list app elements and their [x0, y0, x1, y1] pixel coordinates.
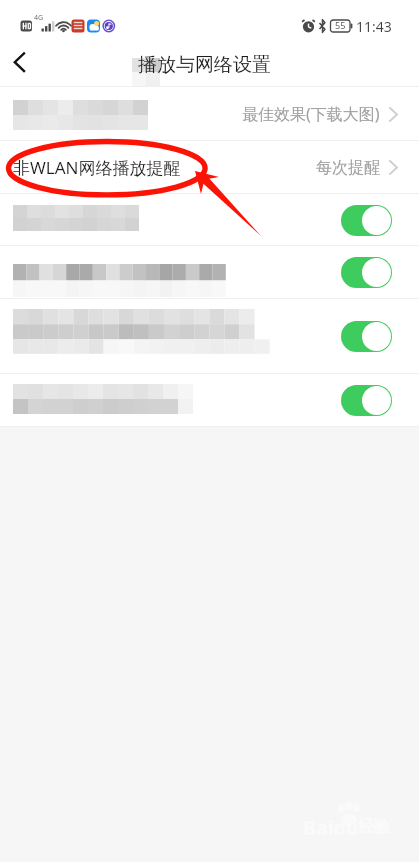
button[interactable]: 最佳效果(下载大图) — [0, 87, 419, 141]
button[interactable]: Back — [0, 43, 44, 87]
button[interactable]: Toggle — [341, 257, 392, 288]
staticText: 非WLAN网络播放提醒 — [13, 156, 181, 179]
staticText: 4G — [34, 13, 44, 23]
button[interactable]: 非WLAN网络播放提醒 — [0, 141, 419, 194]
button[interactable]: Toggle — [0, 374, 419, 427]
staticText: 最佳效果(下载大图) — [242, 103, 380, 125]
button[interactable]: Toggle — [341, 321, 392, 352]
button[interactable]: Toggle — [0, 194, 419, 246]
staticText: 55 — [335, 19, 346, 31]
staticText: 播放与网络设置 — [138, 53, 271, 77]
button[interactable]: Toggle — [341, 205, 392, 236]
staticText: 11:43 — [356, 17, 392, 36]
button[interactable]: Toggle — [341, 385, 392, 416]
button[interactable]: Toggle — [0, 299, 419, 374]
button[interactable]: Toggle — [0, 246, 419, 299]
staticText: 每次提醒 — [316, 158, 380, 178]
